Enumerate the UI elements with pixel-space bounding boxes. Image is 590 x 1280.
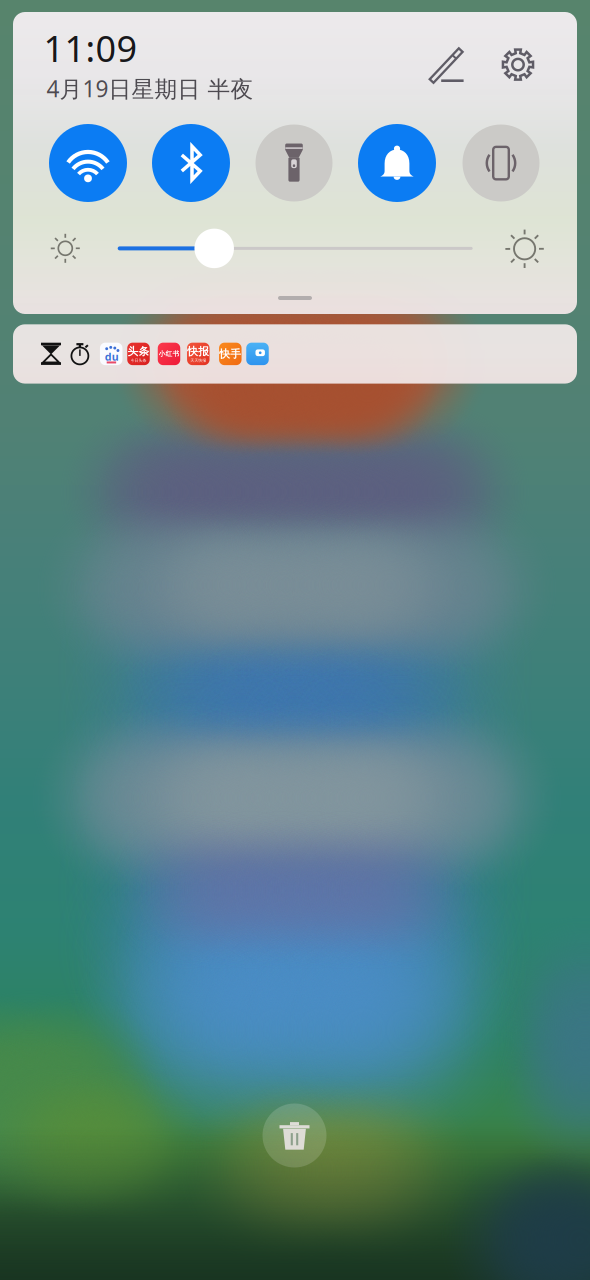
button[interactable]: Stopwatch <box>69 342 90 365</box>
staticText: 快手 <box>219 347 241 360</box>
button[interactable]: Baidu <box>100 343 122 365</box>
button[interactable]: Messages <box>246 343 269 365</box>
button[interactable]: Vibrate <box>462 124 539 201</box>
staticText: du <box>105 349 119 364</box>
staticText: 快报 <box>187 345 209 358</box>
button[interactable]: Kuaishou <box>219 343 242 365</box>
button[interactable]: Wi-Fi <box>49 124 127 202</box>
button[interactable]: Bluetooth <box>152 124 230 202</box>
button[interactable]: Edit <box>423 42 469 88</box>
button[interactable]: Flashlight <box>255 124 332 201</box>
button[interactable]: Ringer <box>358 124 436 202</box>
staticText: 头条 <box>127 345 149 358</box>
button[interactable]: Xiaohongshu <box>158 343 180 365</box>
staticText: 4月19日星期日 半夜 <box>47 73 254 103</box>
staticText: 小红书 <box>158 350 179 358</box>
button[interactable]: Kuaibao <box>187 343 210 365</box>
button[interactable]: Settings <box>495 42 541 88</box>
button[interactable]: Clear all <box>262 1103 326 1167</box>
staticText: 11:09 <box>44 24 138 72</box>
button[interactable]: Toutiao <box>127 343 150 365</box>
staticText: 今日头条 <box>130 358 146 363</box>
staticText: 天天快报 <box>190 358 206 363</box>
button[interactable]: Timer <box>40 342 61 365</box>
